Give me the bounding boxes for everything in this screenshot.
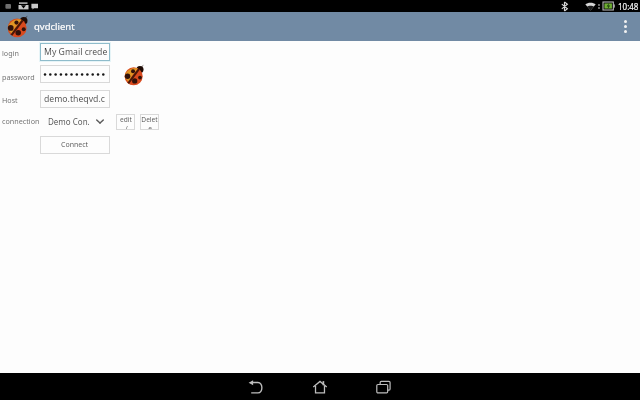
staticText: connection xyxy=(2,116,40,126)
staticText: 10:48 xyxy=(618,1,639,12)
button[interactable]: More options xyxy=(611,12,640,41)
button[interactable]: edit xyxy=(116,114,135,130)
staticText: Demo Con. xyxy=(48,116,90,127)
staticText: demo.theqvd.com xyxy=(44,93,110,105)
staticText: password xyxy=(2,72,35,82)
staticText: e xyxy=(148,124,152,130)
button[interactable] xyxy=(40,65,110,83)
button[interactable]: Delet xyxy=(140,114,159,130)
staticText: Delet xyxy=(141,115,158,124)
button[interactable]: Back xyxy=(234,373,278,400)
staticText: edit xyxy=(120,115,132,124)
staticText: Connect xyxy=(61,140,89,150)
button[interactable]: demo.theqvd.com xyxy=(40,90,110,108)
button[interactable]: Connect xyxy=(40,136,110,154)
staticText: My Gmail crede xyxy=(44,46,108,58)
button[interactable]: Home xyxy=(298,373,342,400)
staticText: login xyxy=(2,48,19,58)
staticText: / xyxy=(125,124,128,130)
button[interactable]: Demo Con. xyxy=(40,113,110,130)
button[interactable]: Recent apps xyxy=(362,373,406,400)
staticText: qvdclient xyxy=(34,20,75,33)
staticText: Host xyxy=(2,95,18,105)
button[interactable]: My Gmail crede xyxy=(40,43,110,61)
